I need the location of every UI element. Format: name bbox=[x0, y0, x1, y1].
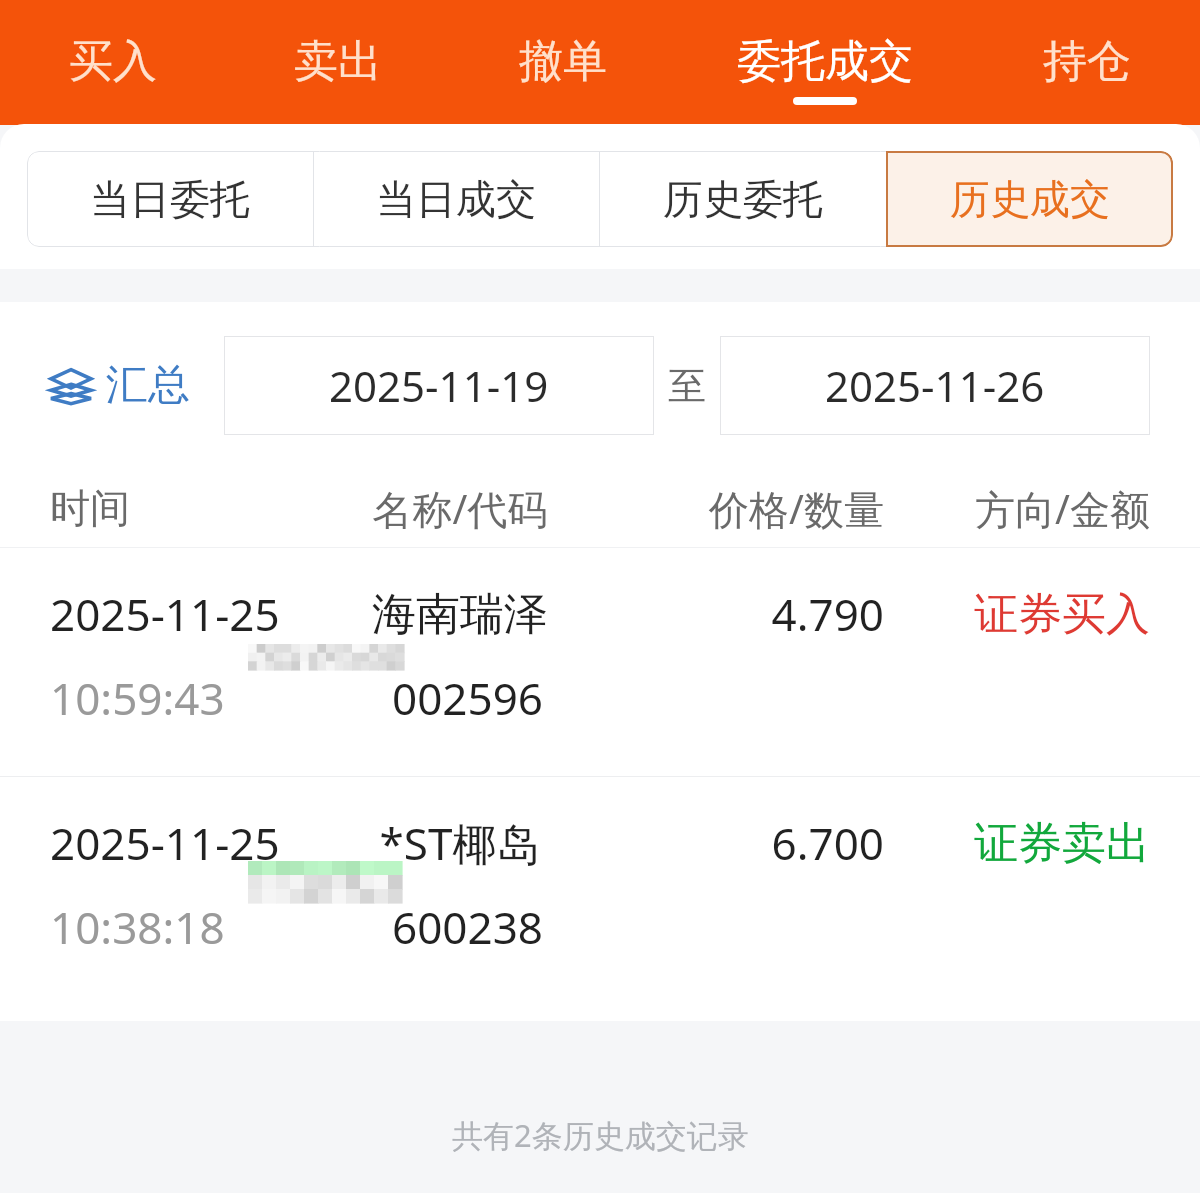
staticText: 600238 bbox=[315, 897, 620, 957]
staticText: 10:38:18 bbox=[50, 897, 315, 957]
button[interactable]: 历史成交 bbox=[886, 151, 1173, 247]
button[interactable]: 2025-11-25 bbox=[0, 777, 1200, 1005]
button[interactable]: 历史委托 bbox=[599, 151, 886, 247]
button[interactable]: 买入 bbox=[0, 0, 225, 125]
staticText: 买入 bbox=[69, 34, 157, 89]
staticText: 历史委托 bbox=[663, 174, 823, 224]
staticText: 10:59:43 bbox=[50, 668, 315, 728]
staticText: 证券卖出 bbox=[902, 816, 1150, 871]
button[interactable]: 汇总 bbox=[50, 359, 190, 412]
staticText: 6.700 bbox=[610, 813, 884, 873]
button[interactable]: 2025-11-26 bbox=[720, 336, 1150, 435]
button[interactable]: 撤单 bbox=[450, 0, 676, 125]
button[interactable]: 委托成交 bbox=[676, 0, 974, 125]
button[interactable]: 2025-11-25 bbox=[0, 548, 1200, 776]
staticText: 2025-11-25 bbox=[50, 584, 310, 644]
staticText: 2025-11-19 bbox=[329, 357, 549, 414]
staticText: 2025-11-26 bbox=[825, 357, 1045, 414]
button[interactable]: 持仓 bbox=[974, 0, 1200, 125]
staticText: 时间 bbox=[50, 483, 310, 533]
staticText: 当日成交 bbox=[376, 174, 536, 224]
staticText: 4.790 bbox=[610, 584, 884, 644]
staticText: 汇总 bbox=[106, 359, 190, 412]
staticText: 当日委托 bbox=[90, 174, 250, 224]
staticText: 价格/数量 bbox=[610, 481, 884, 536]
button[interactable]: 卖出 bbox=[225, 0, 450, 125]
staticText: 历史成交 bbox=[950, 174, 1110, 224]
staticText: 002596 bbox=[315, 668, 620, 728]
staticText: 撤单 bbox=[519, 34, 607, 89]
staticText: *ST椰岛 bbox=[310, 813, 610, 873]
button[interactable]: 当日委托 bbox=[27, 151, 313, 247]
staticText: 委托成交 bbox=[737, 34, 913, 89]
staticText: 共有2条历史成交记录 bbox=[452, 1114, 749, 1156]
staticText: 海南瑞泽 bbox=[310, 587, 610, 642]
staticText: 方向/金额 bbox=[902, 481, 1150, 536]
other: 汇总 bbox=[50, 365, 92, 407]
staticText: 卖出 bbox=[294, 34, 382, 89]
button[interactable]: 2025-11-19 bbox=[224, 336, 654, 435]
staticText: 持仓 bbox=[1043, 34, 1131, 89]
staticText: 证券买入 bbox=[902, 587, 1150, 642]
staticText: 名称/代码 bbox=[310, 481, 610, 536]
button[interactable]: 当日成交 bbox=[313, 151, 599, 247]
staticText: 至 bbox=[668, 362, 706, 410]
staticText: 2025-11-25 bbox=[50, 813, 310, 873]
